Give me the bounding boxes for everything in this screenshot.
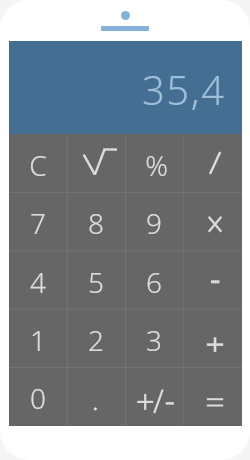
button[interactable]: % [125, 134, 183, 192]
button[interactable]: Decimal point [67, 367, 125, 425]
button[interactable]: 6 [125, 251, 183, 309]
button[interactable]: Plus minus [125, 367, 183, 425]
staticText: 5 [88, 263, 104, 301]
button[interactable]: Equals [183, 367, 241, 425]
button[interactable]: 9 [125, 192, 183, 250]
staticText: % [145, 146, 168, 184]
button[interactable]: 5 [67, 251, 125, 309]
staticText: C [29, 146, 47, 184]
button[interactable]: 1 [9, 309, 67, 367]
staticText: 4 [30, 263, 46, 301]
staticText: 1 [30, 321, 46, 359]
staticText: 2 [88, 321, 104, 359]
button[interactable]: Multiply [183, 192, 241, 250]
button[interactable]: Square root [67, 134, 125, 192]
staticText: 35,4 [142, 62, 226, 116]
staticText: 7 [30, 204, 46, 242]
button[interactable]: 8 [67, 192, 125, 250]
staticText: 9 [146, 204, 162, 242]
button[interactable]: Divide [183, 134, 241, 192]
button[interactable]: 7 [9, 192, 67, 250]
staticText: 0 [30, 379, 46, 417]
staticText: 6 [146, 263, 162, 301]
button[interactable]: 0 [9, 367, 67, 425]
button[interactable]: 2 [67, 309, 125, 367]
button[interactable]: 3 [125, 309, 183, 367]
button[interactable]: 4 [9, 251, 67, 309]
button[interactable]: C [9, 134, 67, 192]
button[interactable]: Minus [183, 251, 241, 309]
staticText: 8 [88, 204, 104, 242]
button[interactable]: Plus [183, 309, 241, 367]
staticText: 3 [146, 321, 162, 359]
